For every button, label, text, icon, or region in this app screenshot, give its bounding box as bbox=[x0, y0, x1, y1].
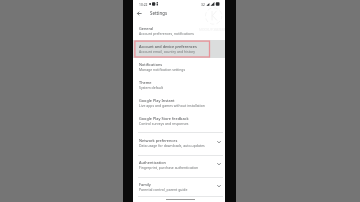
button[interactable]: Google Play Instant bbox=[133, 92, 225, 110]
staticText: Parental control, parent guide bbox=[139, 187, 188, 192]
staticText: MOCKUP-WATERMARK bbox=[199, 28, 225, 32]
button[interactable]: Theme bbox=[133, 74, 225, 92]
staticText: Google Play Store feedback bbox=[139, 116, 189, 121]
staticText: Data usage for downloads, auto-updates bbox=[139, 143, 205, 148]
button[interactable]: Back bbox=[135, 9, 144, 18]
button[interactable]: Authentication bbox=[133, 154, 225, 172]
button[interactable]: Account and device preferences bbox=[133, 38, 225, 56]
staticText: General bbox=[139, 26, 154, 31]
button[interactable]: Google Play Store feedback bbox=[133, 110, 225, 128]
staticText: Manage notification settings bbox=[139, 67, 186, 72]
staticText: Network preferences bbox=[139, 138, 178, 143]
staticText: Notifications bbox=[139, 62, 163, 67]
staticText: 32 bbox=[201, 2, 205, 6]
staticText: Live apps and games without installation bbox=[139, 103, 205, 108]
staticText: Family bbox=[139, 182, 151, 187]
staticText: Google Play Instant bbox=[139, 98, 175, 103]
staticText: Control surveys and responses bbox=[139, 121, 189, 126]
staticText: Theme bbox=[139, 80, 152, 85]
staticText: Account preferences, notifications bbox=[139, 31, 194, 36]
button[interactable]: Family bbox=[133, 176, 225, 194]
staticText: Fingerprint, purchase authentication bbox=[139, 165, 199, 170]
button[interactable]: Network preferences bbox=[133, 132, 225, 150]
button[interactable]: Notifications bbox=[133, 56, 225, 74]
staticText: System default bbox=[139, 85, 163, 90]
button[interactable]: General bbox=[133, 20, 225, 38]
staticText: Settings bbox=[150, 10, 168, 16]
staticText: Authentication bbox=[139, 160, 166, 165]
staticText: Account email, country and history bbox=[139, 49, 196, 54]
staticText: Account and device preferences bbox=[139, 44, 197, 49]
staticText: 10:22 bbox=[139, 2, 148, 6]
